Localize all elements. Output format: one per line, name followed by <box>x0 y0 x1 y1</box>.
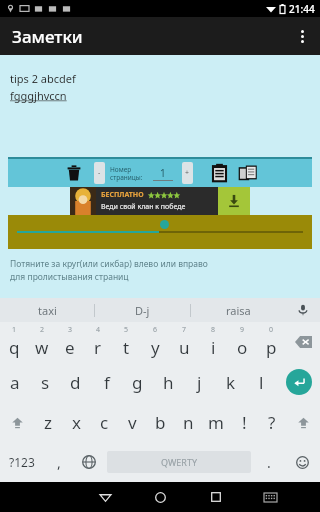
staticText: Номер страницы: <box>110 165 143 182</box>
staticText: raisa <box>226 303 251 318</box>
button[interactable]: Shift <box>286 402 320 442</box>
staticText: b <box>155 411 166 434</box>
button[interactable]: + <box>182 162 193 184</box>
staticText: v <box>128 411 137 434</box>
button[interactable]: s <box>30 362 60 402</box>
staticText: m <box>208 411 224 434</box>
button[interactable]: j <box>184 362 215 402</box>
staticText: k <box>226 371 236 394</box>
button[interactable]: 7 <box>170 322 199 362</box>
button[interactable]: 0 <box>257 322 286 362</box>
staticText: e <box>65 336 75 359</box>
staticText: Потяните за круг(или сикбар) влево или в… <box>10 258 208 270</box>
staticText: 0 <box>269 325 274 335</box>
button[interactable]: raisa <box>191 298 286 322</box>
staticText: + <box>185 168 190 178</box>
button[interactable] <box>8 215 312 249</box>
button[interactable]: . <box>254 442 284 482</box>
button[interactable]: ?123 <box>0 442 44 482</box>
staticText: t <box>123 336 130 359</box>
button[interactable]: 6 <box>141 322 170 362</box>
button[interactable]: 9 <box>228 322 257 362</box>
button[interactable]: D-j <box>95 298 190 322</box>
staticText: Заметки <box>12 25 83 48</box>
button[interactable]: f <box>91 362 122 402</box>
button[interactable]: Enter <box>277 362 320 402</box>
button[interactable]: a <box>0 362 30 402</box>
staticText: h <box>163 371 174 394</box>
staticText: 2 <box>40 325 45 335</box>
button[interactable]: QWERTY <box>107 451 251 473</box>
staticText: D-j <box>135 303 150 318</box>
staticText: r <box>94 336 102 359</box>
staticText: 4 <box>96 325 101 335</box>
staticText: . <box>267 453 271 472</box>
button[interactable]: Delete <box>64 163 84 183</box>
button[interactable]: g <box>122 362 153 402</box>
staticText: БЕСПЛАТНО <box>101 190 144 200</box>
button[interactable]: h <box>153 362 184 402</box>
button[interactable]: Install <box>218 187 250 215</box>
button[interactable]: Recent apps <box>188 482 243 512</box>
staticText: q <box>9 336 20 359</box>
button[interactable]: ? <box>258 402 286 442</box>
button[interactable]: 4 <box>84 322 112 362</box>
button[interactable]: 2 <box>28 322 56 362</box>
button[interactable]: l <box>246 362 277 402</box>
button[interactable]: More options <box>295 24 310 49</box>
staticText: o <box>237 336 248 359</box>
button[interactable]: Back <box>78 482 133 512</box>
staticText: , <box>57 453 61 472</box>
button[interactable]: Keyboard <box>243 482 298 512</box>
staticText: fgggjhvccn <box>10 88 67 103</box>
staticText: i <box>211 336 216 359</box>
button[interactable]: ! <box>230 402 258 442</box>
button[interactable]: k <box>215 362 246 402</box>
staticText: 5 <box>124 325 129 335</box>
staticText: x <box>72 411 81 434</box>
staticText: 3 <box>68 325 73 335</box>
button[interactable]: c <box>90 402 118 442</box>
staticText: s <box>41 371 50 394</box>
button[interactable]: b <box>146 402 174 442</box>
button[interactable]: m <box>202 402 230 442</box>
staticText: Веди свой клан к победе <box>101 202 186 212</box>
button[interactable]: Backspace <box>286 322 320 362</box>
staticText: p <box>266 336 277 359</box>
button[interactable]: Shift <box>0 402 34 442</box>
button[interactable]: x <box>62 402 90 442</box>
button[interactable]: 3 <box>56 322 84 362</box>
button[interactable]: Paste <box>209 163 230 184</box>
staticText: 9 <box>240 325 245 335</box>
staticText: ?123 <box>9 454 35 470</box>
button[interactable]: Copy <box>237 163 258 184</box>
button[interactable]: - <box>94 162 105 184</box>
staticText: 1 <box>12 325 17 335</box>
staticText: y <box>151 336 160 359</box>
staticText: a <box>10 371 20 394</box>
button[interactable]: v <box>118 402 146 442</box>
button[interactable]: 1 <box>0 322 28 362</box>
staticText: для пролистывания страниц <box>10 271 129 283</box>
staticText: z <box>44 411 52 434</box>
staticText: ! <box>242 411 247 434</box>
button[interactable]: Home <box>133 482 188 512</box>
button[interactable]: 5 <box>112 322 141 362</box>
staticText: g <box>132 371 143 394</box>
button[interactable]: , <box>44 442 74 482</box>
button[interactable]: Emoji <box>284 442 320 482</box>
staticText: QWERTY <box>161 456 198 468</box>
button[interactable]: z <box>34 402 62 442</box>
button[interactable]: taxi <box>0 298 94 322</box>
staticText: j <box>197 371 202 394</box>
staticText: - <box>98 168 101 178</box>
staticText: taxi <box>38 303 57 318</box>
button[interactable]: 8 <box>199 322 228 362</box>
button[interactable]: Voice input <box>286 298 320 322</box>
button[interactable]: n <box>174 402 202 442</box>
staticText: w <box>35 336 49 359</box>
staticText: l <box>259 371 264 394</box>
button[interactable]: d <box>60 362 91 402</box>
staticText: ? <box>268 411 276 434</box>
button[interactable]: Change language <box>74 442 104 482</box>
